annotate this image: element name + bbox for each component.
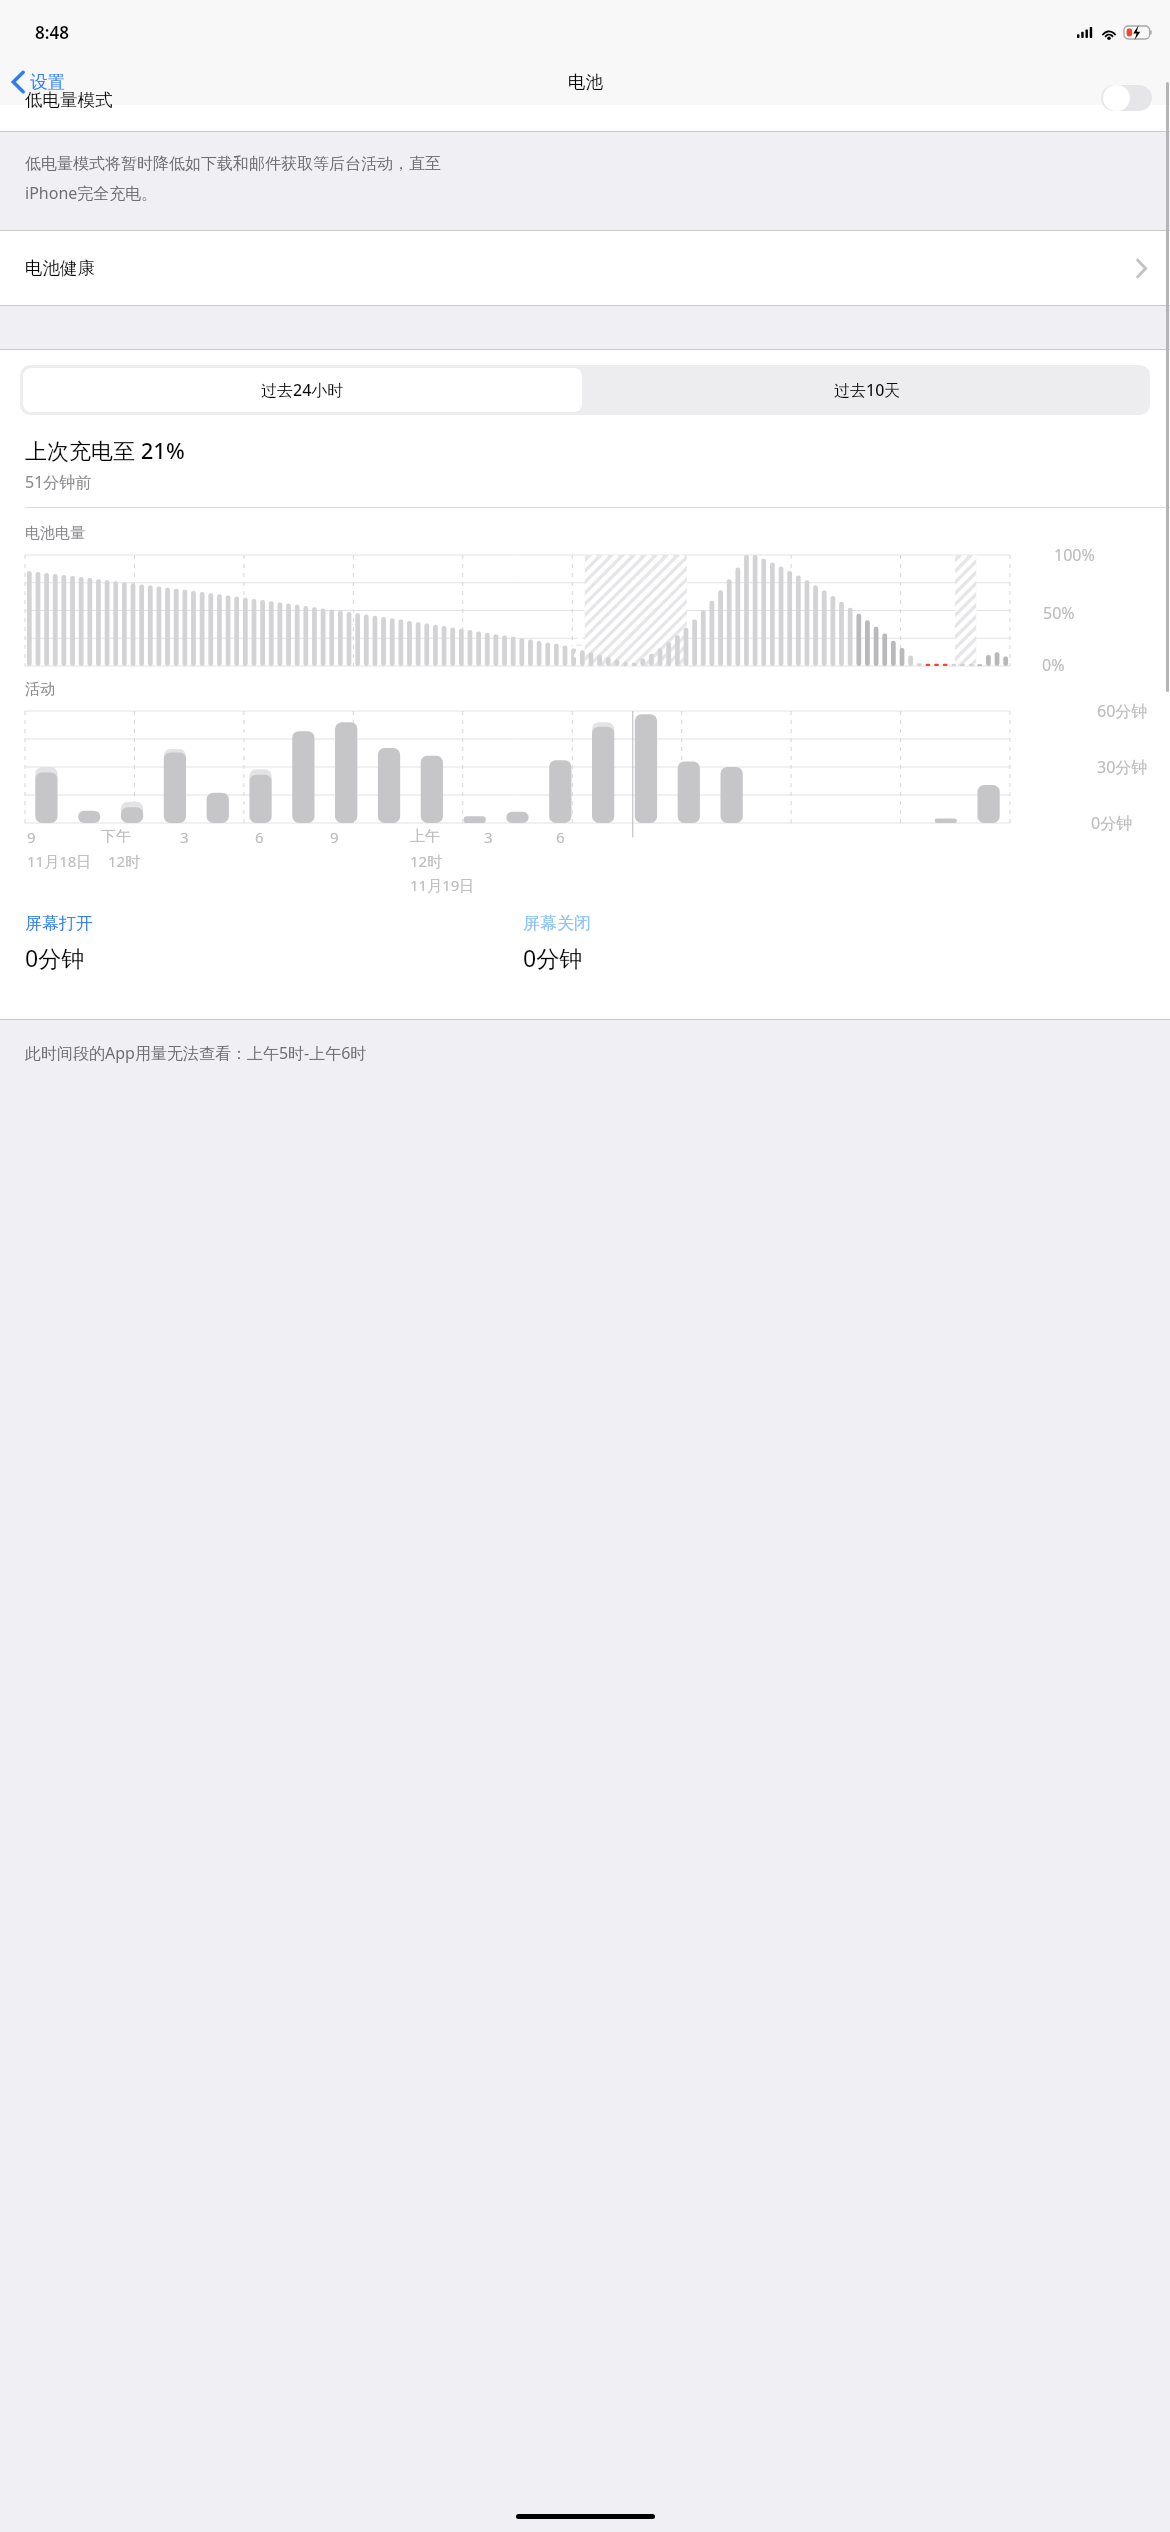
staticText: 12时 [410, 851, 443, 871]
staticText: 6 [255, 827, 264, 847]
staticText: 11月18日 [27, 851, 92, 871]
staticText: 12时 [108, 851, 141, 871]
button[interactable]: 电池健康 [0, 231, 1170, 305]
staticText: 11月19日 [410, 875, 475, 895]
staticText: 上次充电至 21% [25, 435, 185, 465]
staticText: 低电量模式将暂时降低如下载和邮件获取等后台活动，直至 [25, 154, 441, 174]
staticText: 0分钟 [25, 942, 85, 973]
staticText: 屏幕关闭 [523, 913, 591, 934]
staticText: 电池电量 [25, 524, 85, 543]
staticText: 50% [1043, 602, 1075, 624]
staticText: 电池健康 [25, 257, 95, 279]
button[interactable]: 屏幕打开 [25, 913, 523, 973]
button[interactable]: 过去24小时 [23, 368, 582, 412]
staticText: 下午 [101, 827, 131, 846]
button[interactable]: 屏幕关闭 [523, 913, 1170, 973]
staticText: 屏幕打开 [25, 913, 93, 934]
staticText: 低电量模式 [25, 89, 113, 111]
staticText: 0% [1042, 654, 1065, 676]
staticText: 过去24小时 [261, 379, 344, 401]
staticText: 6 [556, 827, 565, 847]
staticText: 30分钟 [1097, 756, 1148, 778]
staticText: 设置 [30, 71, 65, 93]
other: Back [12, 71, 25, 93]
staticText: 60分钟 [1097, 700, 1148, 722]
staticText: 9 [27, 827, 36, 847]
staticText: 此时间段的App用量无法查看：上午5时-上午6时 [25, 1042, 367, 1064]
staticText: 电池 [568, 71, 603, 93]
staticText: 9 [330, 827, 339, 847]
staticText: iPhone完全充电。 [25, 182, 158, 204]
button[interactable]: 低电量模式 [0, 105, 1170, 131]
staticText: 上午 [410, 827, 440, 846]
staticText: 0分钟 [523, 942, 583, 973]
staticText: 51分钟前 [25, 471, 92, 493]
staticText: 活动 [25, 680, 55, 699]
staticText: 100% [1054, 544, 1095, 566]
staticText: 0分钟 [1091, 812, 1133, 834]
staticText: 3 [484, 827, 493, 847]
staticText: 8:48 [35, 21, 69, 44]
staticText: 过去10天 [834, 379, 901, 401]
staticText: 3 [180, 827, 189, 847]
button[interactable]: Back [0, 67, 77, 97]
button[interactable]: 过去10天 [585, 365, 1150, 415]
